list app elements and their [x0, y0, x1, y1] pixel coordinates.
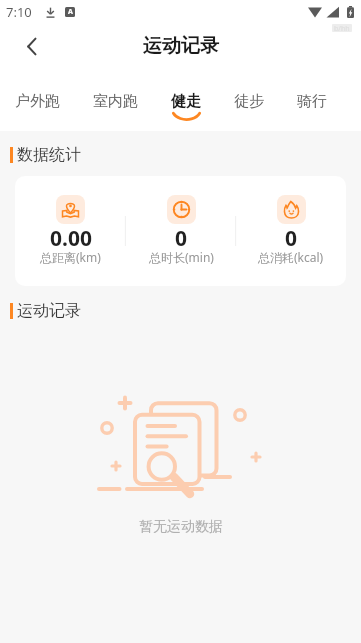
staticText: 总距离(km): [40, 249, 101, 265]
button[interactable]: 骑行: [297, 68, 327, 111]
staticText: 户外跑: [15, 92, 60, 111]
button[interactable]: 健走: [171, 68, 201, 121]
staticText: 0.00: [50, 224, 92, 253]
staticText: 徒步: [234, 92, 264, 111]
staticText: 运动记录: [17, 301, 81, 321]
staticText: A: [68, 7, 73, 17]
staticText: 运动记录: [143, 34, 219, 58]
staticText: 0: [285, 224, 298, 253]
staticText: 总消耗(kcal): [258, 249, 324, 265]
button[interactable]: Back: [12, 26, 52, 66]
staticText: b/hh: [334, 24, 350, 32]
staticText: 0: [175, 224, 188, 253]
staticText: 健走: [171, 92, 201, 111]
staticText: 骑行: [297, 92, 327, 111]
button[interactable]: 户外跑: [15, 68, 60, 111]
staticText: 室内跑: [93, 92, 138, 111]
staticText: 总时长(min): [149, 249, 214, 265]
staticText: 暂无运动数据: [139, 518, 223, 536]
staticText: 7:10: [6, 3, 32, 21]
button[interactable]: 室内跑: [93, 68, 138, 111]
button[interactable]: 徒步: [234, 68, 264, 111]
staticText: 数据统计: [17, 145, 81, 165]
